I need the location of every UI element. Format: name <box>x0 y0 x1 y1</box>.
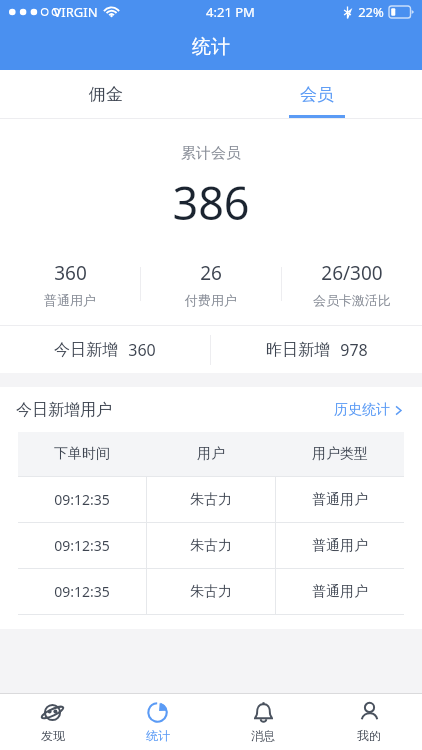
staticText: 普通用户 <box>44 292 96 308</box>
staticText: 用户 <box>197 445 225 463</box>
staticText: 4:21 PM <box>206 3 255 21</box>
staticText: 消息 <box>251 728 275 743</box>
staticText: 09:12:35 <box>54 582 110 601</box>
button[interactable]: 今日新增 <box>0 326 210 373</box>
staticText: 360 <box>54 260 87 286</box>
staticText: 22% <box>358 3 384 21</box>
staticText: 统计 <box>192 35 230 59</box>
staticText: 会员卡激活比 <box>313 292 391 308</box>
staticText: 普通用户 <box>312 537 368 555</box>
button[interactable]: 统计 <box>105 694 210 750</box>
button[interactable]: 昨日新增 <box>211 326 422 373</box>
button[interactable]: 佣金 <box>0 70 211 118</box>
staticText: 用户类型 <box>312 445 368 463</box>
staticText: 历史统计 <box>334 401 390 419</box>
staticText: 普通用户 <box>312 491 368 509</box>
staticText: 累计会员 <box>181 144 241 163</box>
staticText: 朱古力 <box>190 583 232 601</box>
staticText: 统计 <box>146 728 170 743</box>
staticText: 下单时间 <box>54 445 110 463</box>
button[interactable]: 消息 <box>210 694 316 750</box>
button[interactable]: 发现 <box>0 694 105 750</box>
button[interactable]: 会员 <box>211 70 422 118</box>
staticText: 朱古力 <box>190 537 232 555</box>
staticText: VIRGIN <box>53 3 98 21</box>
button[interactable]: 历史统计 <box>330 397 406 423</box>
staticText: 09:12:35 <box>54 490 110 509</box>
staticText: 普通用户 <box>312 583 368 601</box>
button[interactable]: 09:12:35 <box>18 477 404 522</box>
staticText: 我的 <box>357 728 381 743</box>
staticText: 今日新增用户 <box>16 400 112 420</box>
staticText: 付费用户 <box>185 292 237 308</box>
staticText: 发现 <box>41 728 65 743</box>
staticText: 978 <box>340 339 368 361</box>
staticText: 26/300 <box>321 260 383 286</box>
button[interactable]: 我的 <box>316 694 422 750</box>
button[interactable]: 09:12:35 <box>18 569 404 614</box>
staticText: 09:12:35 <box>54 536 110 555</box>
staticText: 会员 <box>300 84 334 105</box>
staticText: 昨日新增 <box>266 340 330 360</box>
staticText: 26 <box>200 260 222 286</box>
staticText: 386 <box>172 172 250 233</box>
staticText: 佣金 <box>89 84 123 105</box>
button[interactable]: 09:12:35 <box>18 523 404 568</box>
staticText: 今日新增 <box>54 340 118 360</box>
staticText: 360 <box>128 339 156 361</box>
staticText: 朱古力 <box>190 491 232 509</box>
